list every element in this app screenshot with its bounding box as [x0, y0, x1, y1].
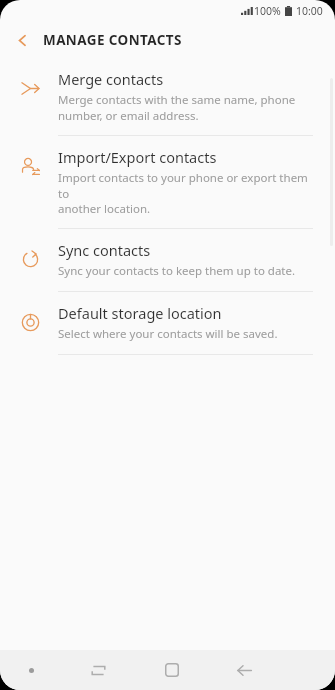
button[interactable]: Assistant	[0, 650, 62, 690]
button[interactable]: Merge contacts	[0, 58, 335, 135]
staticText: Merge contacts	[58, 69, 164, 89]
button[interactable]: Sync contacts	[0, 229, 335, 291]
staticText: Select where your contacts will be saved…	[58, 326, 278, 342]
staticText: Default storage location	[58, 303, 222, 323]
button[interactable]: Import/Export contacts	[0, 136, 335, 228]
staticText: Sync contacts	[58, 240, 151, 260]
staticText: 10:00	[296, 4, 323, 18]
staticText: Import contacts to your phone or export …	[58, 170, 315, 216]
button[interactable]: Back	[208, 650, 281, 690]
staticText: 100%	[254, 4, 281, 18]
staticText: Sync your contacts to keep them up to da…	[58, 263, 296, 279]
staticText: Import/Export contacts	[58, 147, 217, 167]
button[interactable]: Default storage location	[0, 292, 335, 354]
button[interactable]: Home	[135, 650, 208, 690]
staticText: Merge contacts with the same name, phone…	[58, 92, 296, 123]
staticText: MANAGE CONTACTS	[43, 31, 182, 49]
button[interactable]: Recents	[62, 650, 135, 690]
button[interactable]: Navigate up	[5, 23, 39, 57]
